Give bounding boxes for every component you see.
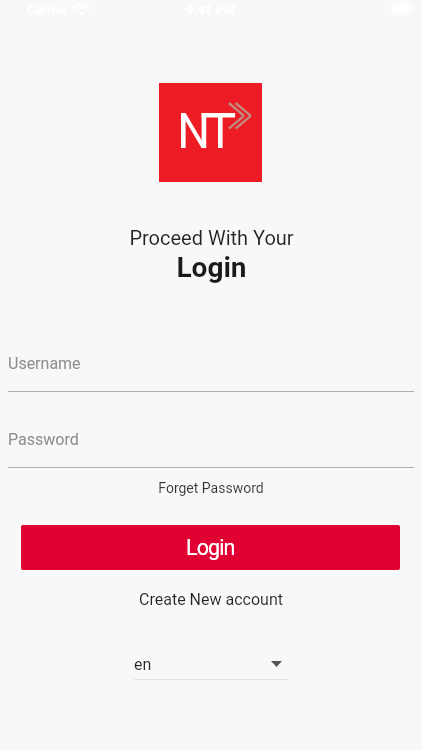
other: Wi-Fi [73, 4, 89, 15]
button[interactable]: Forget Password [150, 477, 272, 499]
staticText: Create New account [139, 590, 283, 609]
other: Choose language [271, 661, 282, 667]
button[interactable]: Login [21, 525, 400, 570]
button[interactable]: Username [8, 344, 414, 393]
staticText: Password [8, 430, 79, 449]
staticText: Forget Password [158, 480, 264, 496]
staticText: Username [8, 354, 81, 373]
other: NT logo [159, 83, 262, 182]
button[interactable]: Password [8, 420, 414, 469]
button[interactable]: en [134, 652, 288, 680]
staticText: en [134, 655, 152, 674]
staticText: Login [186, 535, 235, 560]
button[interactable]: Create New account [131, 587, 291, 612]
staticText: Proceed With Your [129, 226, 294, 249]
staticText: Login [176, 251, 247, 284]
